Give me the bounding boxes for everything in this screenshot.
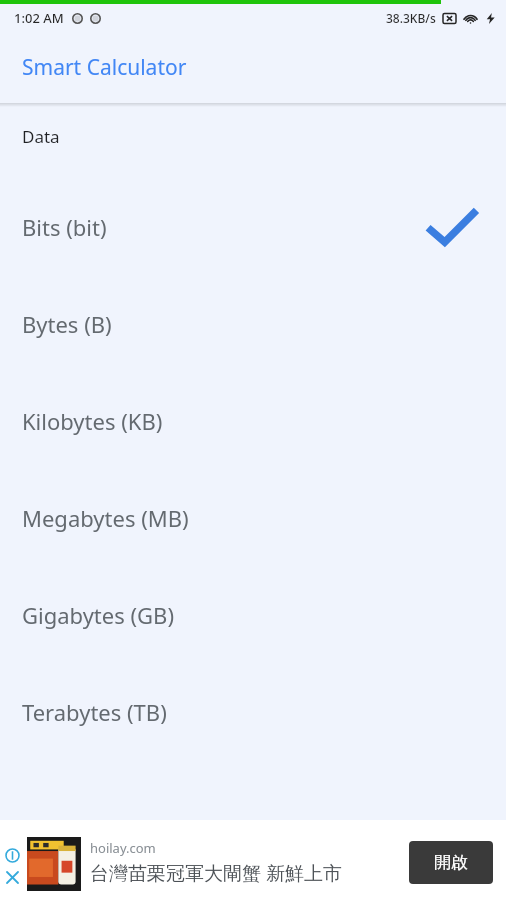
button[interactable]: Smart Calculator — [0, 32, 506, 103]
button[interactable]: Megabytes (MB) — [0, 469, 506, 566]
button[interactable]: Kilobytes (KB) — [0, 372, 506, 469]
button[interactable]: Bits (bit) — [0, 178, 506, 275]
button[interactable]: Terabytes (TB) — [0, 663, 506, 760]
button[interactable]: Close ad — [3, 868, 21, 886]
staticText: hoilay.com — [90, 839, 156, 857]
staticText: Terabytes (TB) — [22, 697, 167, 727]
staticText: 1:02 AM — [14, 9, 64, 27]
button[interactable]: 開啟 — [409, 841, 493, 884]
staticText: Gigabytes (GB) — [22, 600, 174, 630]
button[interactable]: Ad information — [0, 820, 506, 900]
staticText: Kilobytes (KB) — [22, 406, 163, 436]
staticText: Bits (bit) — [22, 212, 107, 242]
staticText: 台灣苗栗冠軍大閘蟹 新鮮上市 — [90, 860, 342, 886]
staticText: Bytes (B) — [22, 309, 112, 339]
button[interactable]: Ad information — [3, 846, 21, 864]
staticText: 38.3KB/s — [386, 10, 436, 26]
button[interactable]: Bytes (B) — [0, 275, 506, 372]
button[interactable]: Gigabytes (GB) — [0, 566, 506, 663]
staticText: Data — [22, 125, 60, 148]
staticText: Smart Calculator — [22, 53, 187, 82]
staticText: 開啟 — [434, 852, 468, 873]
staticText: Megabytes (MB) — [22, 503, 189, 533]
